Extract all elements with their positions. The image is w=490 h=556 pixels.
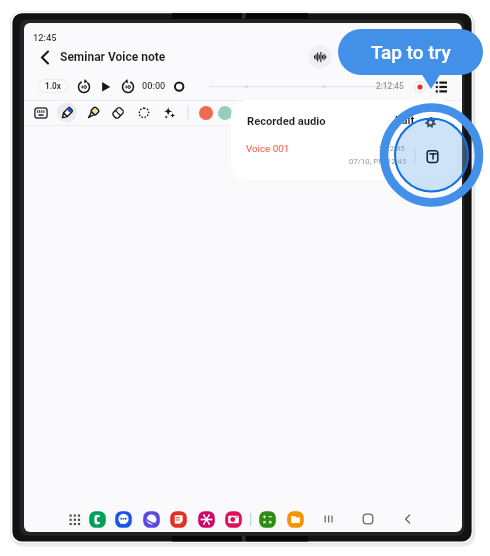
staticText: 2:12:45 [376,81,404,91]
button[interactable]: App [224,510,243,529]
button[interactable]: App [169,510,188,529]
button[interactable]: Forward 10 seconds [117,76,139,98]
button[interactable]: Text [421,145,442,166]
button[interactable]: App [197,510,216,529]
staticText: Tap to try [371,41,451,63]
button[interactable]: Show list [431,75,453,97]
button[interactable]: Pen [57,103,77,123]
button[interactable]: Rewind 10 seconds [73,76,95,98]
button[interactable]: Highlighter [83,103,103,123]
staticText: 00:00 [142,80,166,91]
staticText: Edit [395,114,415,127]
button[interactable]: App [114,510,133,529]
button[interactable]: Edit [393,113,416,128]
button[interactable]: Play [91,76,113,98]
staticText: 1.0x [45,81,61,91]
staticText: 12:45 [33,32,57,43]
button[interactable]: Apps [64,509,84,529]
button[interactable]: My Files [286,510,305,529]
button[interactable]: Calculator [258,510,277,529]
button[interactable]: App [88,510,107,529]
button[interactable]: 1.0x [38,79,68,93]
button[interactable]: AI tools [159,103,179,123]
button[interactable]: Back [398,509,418,529]
staticText: Seminar Voice note [60,50,166,64]
button[interactable]: Recents [319,509,339,529]
staticText: Voice 001 [246,143,290,154]
button[interactable]: Home [358,509,378,529]
staticText: 2:12:45 [379,144,405,153]
button[interactable]: Red colour [199,106,213,120]
button[interactable]: Teal colour [218,106,232,120]
staticText: Recorded audio [247,115,326,128]
button[interactable]: Waveform [306,43,334,71]
button[interactable]: Tap to try [338,29,483,75]
button[interactable]: Keyboard [31,103,51,123]
button[interactable]: Settings [420,112,440,132]
button[interactable]: App [142,510,161,529]
button[interactable]: Eraser [108,103,128,123]
button[interactable]: Record [409,76,431,98]
button[interactable]: Lasso select [134,103,154,123]
staticText: 07/10, PM 12:45 [349,157,407,166]
button[interactable]: Back [31,43,58,70]
